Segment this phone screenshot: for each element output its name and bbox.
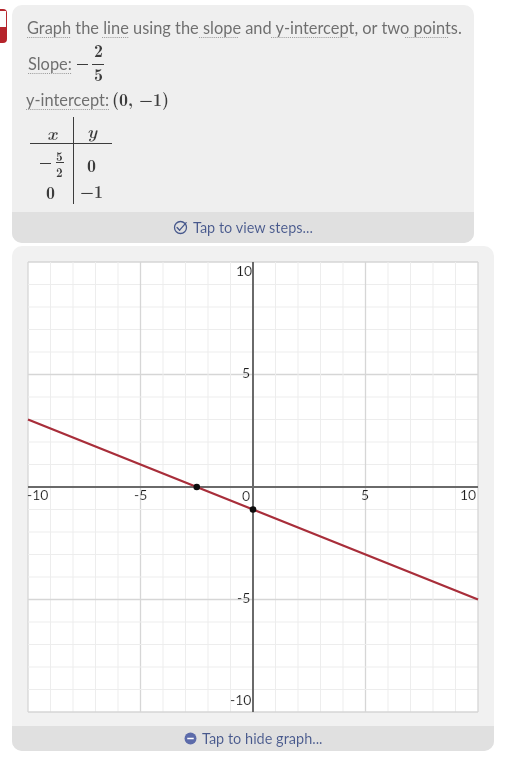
staticText: Slope: (28, 54, 72, 74)
staticText: 5 (242, 364, 251, 381)
staticText: 2 (56, 162, 63, 181)
staticText: Graph the line using the slope and y-int… (27, 18, 462, 38)
button[interactable]: Tap to hide graph... (12, 726, 494, 751)
staticText: 5 (94, 61, 103, 87)
staticText: 10 (460, 486, 477, 503)
other: Avatar (0, 9, 7, 43)
staticText: 2 (94, 37, 103, 63)
staticText: y-intercept: (26, 90, 110, 110)
staticText: 0 (46, 179, 55, 205)
staticText: -10 (27, 486, 49, 503)
staticText: 5 (361, 486, 370, 503)
staticText: Tap to view steps... (193, 219, 313, 236)
staticText: 0 (242, 487, 251, 504)
staticText: −1 (80, 178, 104, 204)
staticText: 0 (87, 152, 96, 178)
staticText: y (87, 117, 98, 143)
staticText: (0, −1) (112, 86, 170, 112)
staticText: 10 (236, 262, 253, 279)
staticText: -10 (230, 691, 252, 708)
staticText: -5 (237, 589, 251, 606)
button[interactable]: Tap to view steps... (12, 212, 474, 243)
staticText: 5 (56, 146, 63, 165)
staticText: Tap to hide graph... (202, 730, 323, 747)
staticText: -5 (134, 486, 148, 503)
staticText: x (47, 119, 58, 145)
